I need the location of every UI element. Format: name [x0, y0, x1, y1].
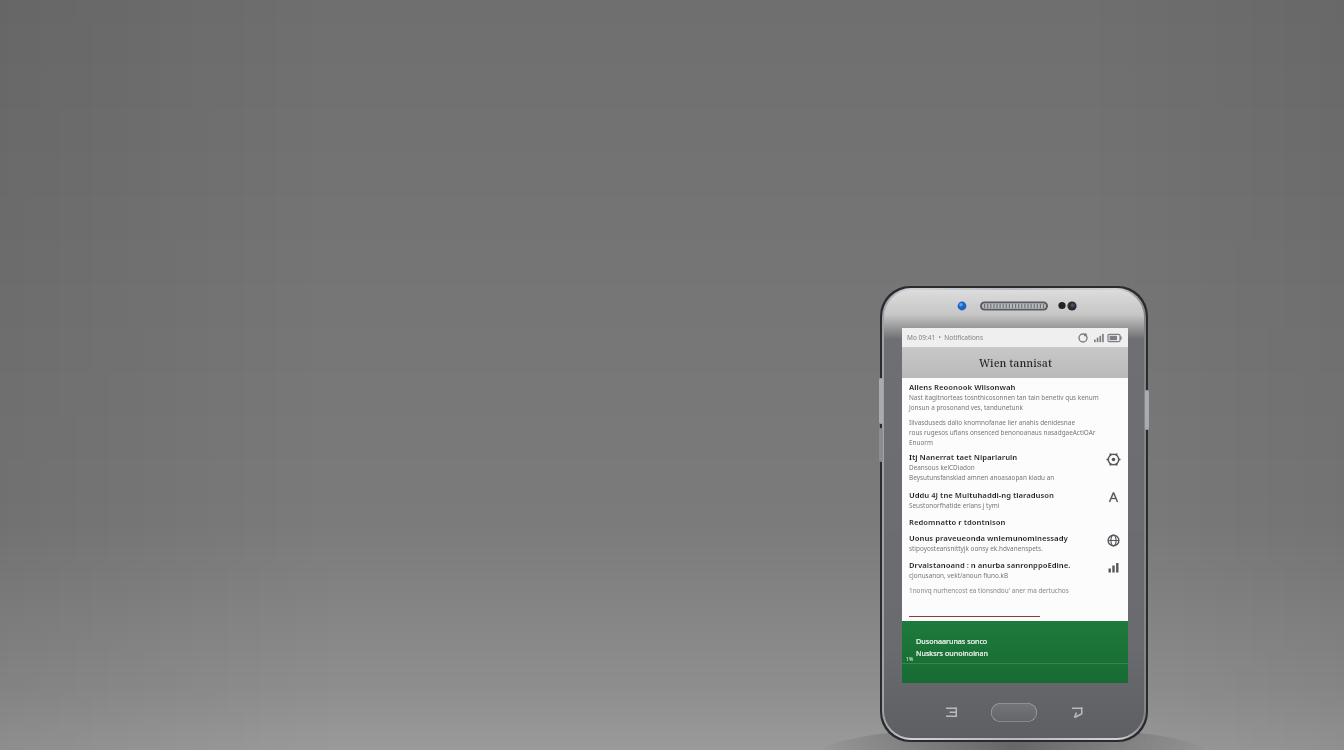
staticText: Deansous kelCDiadon — [909, 463, 975, 472]
staticText: Seustonorfhatide erlans j tymi — [909, 501, 1000, 510]
button[interactable]: Home — [991, 703, 1037, 722]
button[interactable]: Text size — [1106, 490, 1121, 505]
staticText: cJonusanon, vekt/anoun fiuno.kB — [909, 571, 1009, 580]
button[interactable]: Redomnatto r tdontnison — [909, 517, 1121, 528]
staticText: Uddu 4J tne Multuhaddi-ng tlaraduson — [909, 490, 1055, 500]
button[interactable]: Open link — [1106, 533, 1121, 548]
button[interactable]: 1nonvq nurhencost ea tionsndou' aner ma … — [909, 586, 1121, 596]
staticText: Allens Reoonook Wilsonwah — [909, 382, 1016, 392]
button[interactable]: Uonus praveueonda wnlemunominessady — [909, 533, 1121, 554]
staticText: Wien tannisat — [979, 356, 1052, 370]
staticText: Redomnatto r tdontnison — [909, 517, 1006, 527]
button[interactable]: Allens Reoonook Wilsonwah — [909, 382, 1121, 413]
button[interactable]: Ilivasduseds dalio knomnofanae lier anah… — [909, 418, 1121, 448]
staticText: Nusksrs ounoinoinan — [916, 648, 988, 658]
staticText: 1% — [906, 655, 914, 662]
button[interactable]: Wien tannisat — [902, 347, 1128, 378]
staticText: Mo 09:41 • Notifications — [907, 333, 983, 342]
staticText: Itj Nanerrat taet Niparlaruln — [909, 452, 1018, 462]
button[interactable]: Drvaistanoand : n anurba sanronppoEdine. — [909, 560, 1121, 581]
button[interactable]: More — [1106, 560, 1121, 575]
button[interactable]: Settings — [1106, 452, 1121, 467]
button[interactable]: Recent apps — [940, 701, 962, 723]
staticText: Uonus praveueonda wnlemunominessady — [909, 533, 1068, 543]
button[interactable]: Back — [1066, 701, 1088, 723]
staticText: Beysutunsfanskiad amnen anoasaopan kiadu… — [909, 473, 1055, 482]
staticText: Ilivasduseds dalio knomnofanae lier anah… — [909, 418, 1076, 427]
staticText: stipoyosteansnittyjk oonsy ek.hdvanenspe… — [909, 544, 1043, 553]
staticText: rous rugesos uflans onsenced benonoanaus… — [909, 428, 1096, 437]
staticText: Drvaistanoand : n anurba sanronppoEdine. — [909, 560, 1071, 570]
button[interactable]: Dusonaarunas sonco — [902, 621, 1128, 683]
staticText: Enuorm — [909, 438, 933, 447]
button[interactable]: Uddu 4J tne Multuhaddi-ng tlaraduson — [909, 490, 1121, 511]
staticText: Jonsun a prosonand ves, tandunetunk — [909, 403, 1023, 412]
staticText: Dusonaarunas sonco — [916, 636, 988, 646]
staticText: 1nonvq nurhencost ea tionsndou' aner ma … — [909, 586, 1069, 595]
button[interactable]: Itj Nanerrat taet Niparlaruln — [909, 452, 1121, 483]
staticText: Nast itagitnorteas tosnthicosonnen tan t… — [909, 393, 1099, 402]
